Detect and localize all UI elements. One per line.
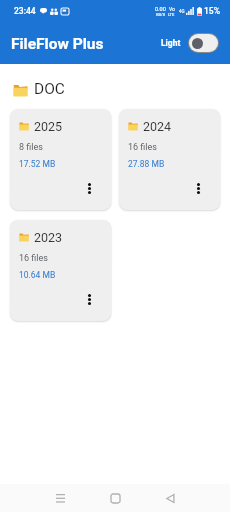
staticText: 2023 bbox=[34, 230, 63, 245]
staticText: 27.88 MB bbox=[128, 159, 165, 169]
button[interactable]: Light bbox=[161, 29, 219, 57]
staticText: 2024 bbox=[143, 119, 172, 134]
staticText: 17.52 MB bbox=[19, 159, 56, 169]
staticText: Vo bbox=[169, 6, 175, 12]
button[interactable]: More options bbox=[82, 292, 96, 306]
button[interactable]: Home bbox=[100, 484, 130, 512]
staticText: 23:44 bbox=[14, 6, 36, 16]
staticText: FileFlow Plus bbox=[11, 35, 104, 53]
staticText: Light bbox=[161, 38, 181, 48]
staticText: 0.00 bbox=[155, 6, 166, 12]
button[interactable]: 2025 bbox=[10, 109, 111, 210]
staticText: 4G bbox=[179, 9, 185, 14]
button[interactable]: 2024 bbox=[119, 109, 220, 210]
staticText: KB/S bbox=[156, 12, 166, 17]
staticText: 15% bbox=[204, 6, 220, 16]
staticText: 2025 bbox=[34, 119, 63, 134]
button[interactable]: More options bbox=[191, 181, 205, 195]
staticText: 10.64 MB bbox=[19, 270, 56, 280]
button[interactable]: More options bbox=[82, 181, 96, 195]
staticText: 16 files bbox=[128, 142, 157, 153]
staticText: 8 files bbox=[19, 142, 43, 153]
staticText: DOC bbox=[34, 80, 65, 98]
staticText: 16 files bbox=[19, 253, 48, 264]
staticText: LTE bbox=[168, 12, 175, 17]
button[interactable]: Back bbox=[155, 484, 185, 512]
button[interactable]: Recents bbox=[45, 484, 75, 512]
button[interactable]: 2023 bbox=[10, 220, 111, 321]
